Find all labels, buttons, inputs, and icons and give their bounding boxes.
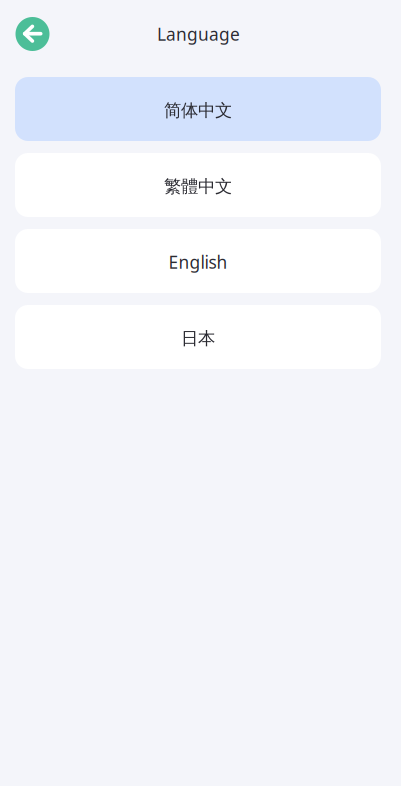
staticText: English	[168, 250, 227, 273]
button[interactable]: 简体中文	[15, 77, 381, 141]
button[interactable]: 日本	[15, 305, 381, 369]
button[interactable]: Back	[15, 17, 49, 51]
button[interactable]: 繁體中文	[15, 153, 381, 217]
staticText: Language	[157, 22, 240, 45]
staticText: 简体中文	[164, 100, 232, 121]
staticText: 日本	[181, 328, 215, 349]
button[interactable]: English	[15, 229, 381, 293]
staticText: 繁體中文	[164, 176, 232, 197]
